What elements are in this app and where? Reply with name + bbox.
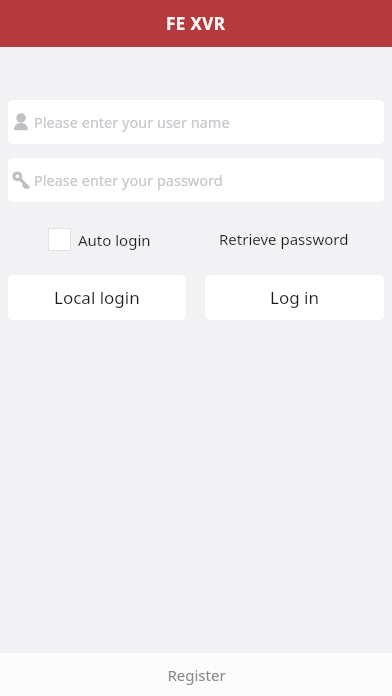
staticText: Auto login	[78, 230, 151, 250]
button[interactable]: Local login	[8, 275, 186, 320]
button[interactable]: Auto login	[48, 228, 155, 251]
button[interactable]: Please enter your user name	[8, 100, 384, 144]
staticText: Local login	[54, 286, 140, 309]
staticText: Retrieve password	[219, 229, 349, 249]
button[interactable]: Please enter your password	[8, 158, 384, 202]
button[interactable]: Register	[0, 653, 392, 696]
button[interactable]: Log in	[205, 275, 384, 320]
button[interactable]: Retrieve password	[219, 229, 349, 249]
staticText: FE XVR	[166, 12, 226, 35]
staticText: Please enter your user name	[34, 112, 230, 132]
staticText: Log in	[270, 286, 319, 309]
staticText: Please enter your password	[34, 170, 223, 190]
staticText: Register	[167, 665, 226, 685]
